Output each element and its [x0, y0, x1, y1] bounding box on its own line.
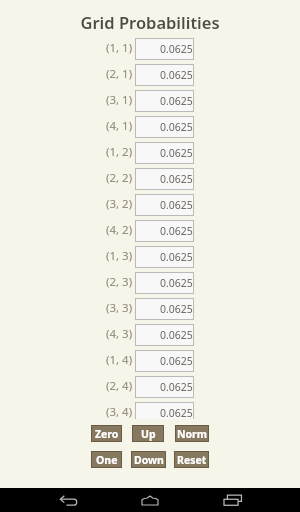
button[interactable]: 0.0625: [135, 376, 194, 398]
staticText: (3, 3): [106, 300, 133, 316]
button[interactable]: Down: [131, 451, 166, 468]
staticText: 0.0625: [160, 276, 193, 290]
button[interactable]: 0.0625: [135, 116, 194, 138]
button[interactable]: Recent apps: [209, 488, 257, 512]
button[interactable]: 0.0625: [135, 142, 194, 164]
staticText: (2, 3): [106, 274, 133, 290]
staticText: (1, 3): [106, 248, 133, 264]
button[interactable]: 0.0625: [135, 402, 194, 419]
staticText: 0.0625: [160, 380, 193, 394]
staticText: (3, 1): [106, 92, 133, 108]
staticText: (1, 1): [106, 40, 133, 56]
staticText: (2, 1): [106, 66, 133, 82]
staticText: 0.0625: [160, 42, 193, 56]
button[interactable]: Home: [126, 488, 174, 512]
staticText: 0.0625: [160, 406, 193, 419]
staticText: 0.0625: [160, 172, 193, 186]
staticText: (4, 3): [106, 326, 133, 342]
staticText: 0.0625: [160, 94, 193, 108]
staticText: 0.0625: [160, 198, 193, 212]
button[interactable]: 0.0625: [135, 194, 194, 216]
staticText: 0.0625: [160, 68, 193, 82]
button[interactable]: 0.0625: [135, 246, 194, 268]
staticText: (3, 4): [106, 404, 133, 419]
button[interactable]: 0.0625: [135, 90, 194, 112]
staticText: Down: [134, 453, 164, 467]
button[interactable]: Up: [132, 425, 164, 442]
button[interactable]: 0.0625: [135, 220, 194, 242]
button[interactable]: Reset: [174, 451, 209, 468]
button[interactable]: Back: [45, 488, 93, 512]
staticText: One: [96, 453, 118, 467]
staticText: Reset: [177, 453, 207, 467]
staticText: (2, 4): [106, 378, 133, 394]
staticText: 0.0625: [160, 328, 193, 342]
staticText: Norm: [177, 427, 208, 441]
button[interactable]: 0.0625: [135, 38, 194, 60]
button[interactable]: 0.0625: [135, 350, 194, 372]
staticText: 0.0625: [160, 120, 193, 134]
staticText: 0.0625: [160, 302, 193, 316]
button[interactable]: Norm: [175, 425, 209, 442]
staticText: (1, 4): [106, 352, 133, 368]
button[interactable]: 0.0625: [135, 298, 194, 320]
staticText: Grid Probabilities: [80, 11, 220, 33]
staticText: Zero: [95, 427, 119, 441]
button[interactable]: One: [91, 451, 122, 468]
staticText: (4, 2): [106, 222, 133, 238]
staticText: Up: [141, 427, 156, 441]
staticText: 0.0625: [160, 250, 193, 264]
staticText: (1, 2): [106, 144, 133, 160]
button[interactable]: 0.0625: [135, 64, 194, 86]
staticText: 0.0625: [160, 224, 193, 238]
staticText: (4, 1): [106, 118, 133, 134]
staticText: (3, 2): [106, 196, 133, 212]
staticText: 0.0625: [160, 354, 193, 368]
button[interactable]: Zero: [91, 425, 122, 442]
button[interactable]: 0.0625: [135, 324, 194, 346]
staticText: (2, 2): [106, 170, 133, 186]
staticText: 0.0625: [160, 146, 193, 160]
button[interactable]: 0.0625: [135, 168, 194, 190]
button[interactable]: 0.0625: [135, 272, 194, 294]
